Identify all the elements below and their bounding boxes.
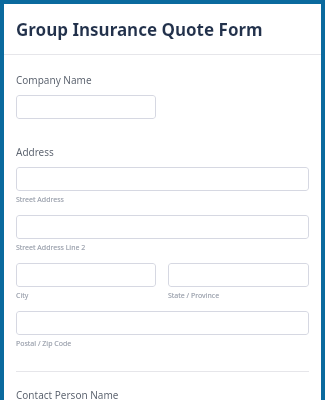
staticText: Street Address Line 2 bbox=[16, 243, 86, 253]
staticText: Group Insurance Quote Form bbox=[16, 18, 263, 41]
button[interactable]: Postal / Zip Code input bbox=[16, 311, 309, 335]
button[interactable]: City input bbox=[16, 263, 156, 287]
staticText: Address bbox=[16, 145, 54, 159]
staticText: Contact Person Name bbox=[16, 388, 119, 400]
button[interactable]: Street Address input bbox=[16, 167, 309, 191]
staticText: State / Province bbox=[168, 291, 220, 301]
button[interactable]: Street Address Line 2 input bbox=[16, 215, 309, 239]
staticText: Street Address bbox=[16, 195, 64, 205]
staticText: Company Name bbox=[16, 73, 92, 87]
button[interactable]: State / Province input bbox=[168, 263, 309, 287]
button[interactable]: Company Name input bbox=[16, 95, 156, 119]
staticText: City bbox=[16, 291, 29, 301]
staticText: Postal / Zip Code bbox=[16, 339, 72, 349]
